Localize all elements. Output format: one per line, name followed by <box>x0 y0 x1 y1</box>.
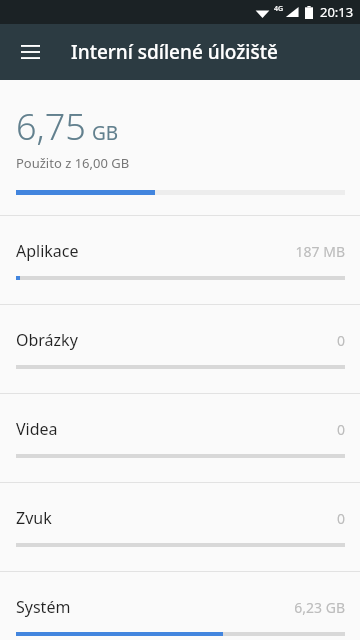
staticText: GB <box>92 120 119 146</box>
staticText: Videa <box>16 418 336 440</box>
button[interactable]: Zvuk <box>0 483 360 572</box>
staticText: 0 <box>336 331 345 350</box>
staticText: Aplikace <box>16 240 295 262</box>
staticText: 4G <box>274 4 284 14</box>
staticText: 6,75 <box>16 102 86 151</box>
staticText: Systém <box>16 596 294 618</box>
staticText: 0 <box>336 420 345 439</box>
staticText: 20:13 <box>320 3 354 21</box>
staticText: Interní sdílené úložiště <box>71 39 278 65</box>
button[interactable]: Videa <box>0 394 360 483</box>
button[interactable]: Navigation menu <box>12 34 48 70</box>
staticText: 187 MB <box>295 242 345 261</box>
staticText: Zvuk <box>16 507 336 529</box>
staticText: 0 <box>336 509 345 528</box>
button[interactable]: Systém <box>0 572 360 640</box>
staticText: Obrázky <box>16 329 336 351</box>
staticText: Použito z 16,00 GB <box>16 154 130 172</box>
button[interactable]: Obrázky <box>0 305 360 394</box>
staticText: 6,23 GB <box>294 598 345 617</box>
button[interactable]: Aplikace <box>0 216 360 305</box>
